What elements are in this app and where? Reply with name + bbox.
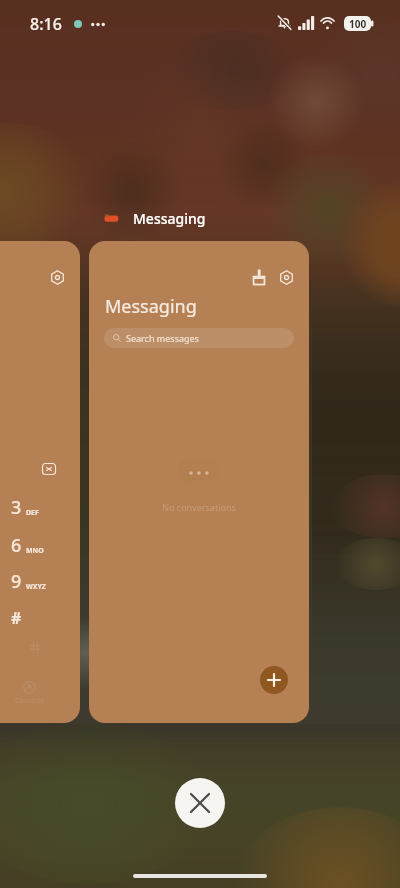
staticText: Messaging xyxy=(105,294,197,319)
button[interactable]: Messaging xyxy=(104,209,206,228)
staticText: 8:16 xyxy=(30,13,62,35)
button[interactable]: Contacts xyxy=(13,681,45,706)
staticText: MNO xyxy=(26,546,44,556)
button[interactable]: Clean up xyxy=(249,267,269,287)
button[interactable]: 3 xyxy=(0,241,80,723)
staticText: Messaging xyxy=(133,209,206,228)
staticText: WXYZ xyxy=(26,582,46,592)
staticText: # xyxy=(11,607,22,629)
staticText: 100 xyxy=(349,17,367,31)
button[interactable]: New conversation xyxy=(260,666,288,694)
staticText: 6 xyxy=(11,533,22,558)
staticText: 3 xyxy=(11,495,22,520)
staticText: No conversations xyxy=(162,501,236,513)
staticText: DEF xyxy=(26,508,39,518)
staticText: Search messages xyxy=(126,332,199,344)
staticText: 9 xyxy=(11,569,22,594)
button[interactable]: Settings xyxy=(276,267,296,287)
button[interactable]: Clean up xyxy=(89,241,309,723)
button[interactable]: Keypad xyxy=(30,642,41,653)
staticText: Contacts xyxy=(15,696,44,706)
button[interactable]: Close all xyxy=(175,778,225,828)
button[interactable]: Search messages xyxy=(104,328,294,348)
